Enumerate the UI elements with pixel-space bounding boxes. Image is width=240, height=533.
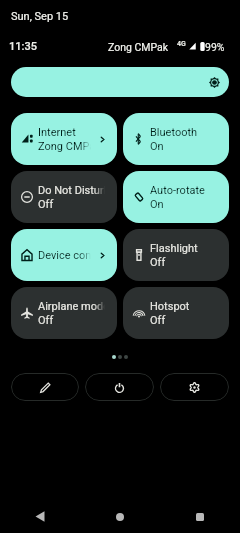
button[interactable]: Bluetooth bbox=[123, 113, 229, 165]
button[interactable]: Back bbox=[22, 500, 58, 533]
button[interactable]: Power bbox=[85, 373, 154, 401]
staticText: 99% bbox=[205, 41, 225, 53]
button[interactable]: Recent apps bbox=[182, 500, 218, 533]
button[interactable]: Device controls bbox=[11, 229, 117, 281]
button[interactable]: Home bbox=[102, 500, 138, 533]
staticText: Auto-rotate bbox=[150, 184, 205, 197]
staticText: Airplane mode bbox=[38, 300, 105, 313]
staticText: Off bbox=[150, 314, 166, 327]
button[interactable]: Internet bbox=[11, 113, 117, 165]
button[interactable]: Brightness bbox=[11, 67, 229, 97]
staticText: On bbox=[150, 140, 164, 153]
staticText: Off bbox=[150, 256, 166, 269]
staticText: Flashlight bbox=[150, 242, 198, 255]
staticText: On bbox=[150, 198, 164, 211]
staticText: Internet bbox=[38, 126, 76, 139]
staticText: 11:35 bbox=[9, 40, 37, 53]
staticText: Bluetooth bbox=[150, 126, 198, 139]
staticText: Device controls bbox=[38, 249, 91, 262]
staticText: 4G bbox=[177, 40, 186, 48]
button[interactable]: Flashlight bbox=[123, 229, 229, 281]
staticText: Zong CMPak bbox=[38, 140, 91, 153]
staticText: Hotspot bbox=[150, 300, 190, 313]
staticText: Sun, Sep 15 bbox=[11, 10, 69, 23]
staticText: Zong CMPak bbox=[108, 41, 169, 53]
button[interactable]: Do Not Disturb bbox=[11, 171, 117, 223]
button[interactable]: Auto-rotate bbox=[123, 171, 229, 223]
button[interactable]: Airplane mode bbox=[11, 287, 117, 339]
staticText: Off bbox=[38, 314, 54, 327]
button[interactable]: Hotspot bbox=[123, 287, 229, 339]
button[interactable]: Settings bbox=[160, 373, 229, 401]
button[interactable]: Edit bbox=[11, 373, 79, 401]
staticText: Do Not Disturb bbox=[38, 184, 105, 197]
staticText: Off bbox=[38, 198, 54, 211]
